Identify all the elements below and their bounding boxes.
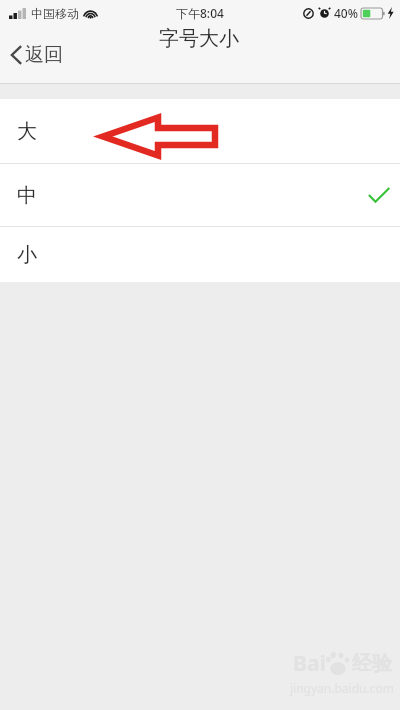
staticText: 小: [17, 242, 37, 267]
staticText: 返回: [25, 43, 63, 67]
staticText: Bai: [293, 649, 326, 678]
staticText: 经验: [352, 651, 392, 676]
staticText: 大: [17, 119, 37, 144]
button[interactable]: 大: [0, 99, 400, 163]
staticText: jingyan.baidu.com: [290, 680, 394, 696]
staticText: 下午8:04: [176, 5, 224, 21]
button[interactable]: 中: [0, 164, 400, 226]
staticText: 中: [17, 183, 37, 208]
staticText: 中国移动: [31, 6, 79, 21]
button[interactable]: 小: [0, 227, 400, 282]
staticText: 字号大小: [0, 26, 399, 51]
staticText: 40%: [334, 5, 358, 21]
button[interactable]: 返回: [0, 35, 77, 75]
